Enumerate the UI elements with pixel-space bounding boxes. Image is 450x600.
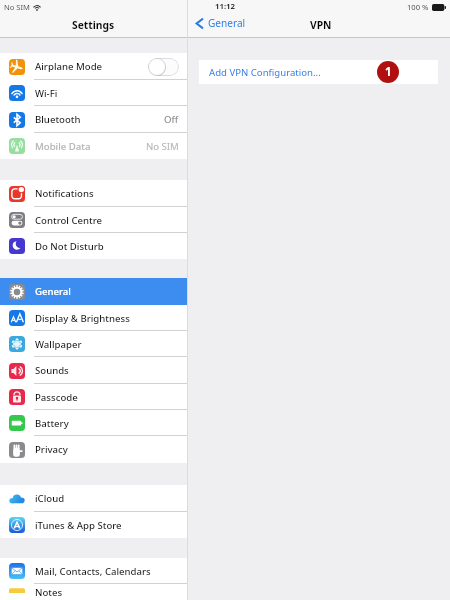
staticText: No SIM	[4, 2, 30, 12]
staticText: Mail, Contacts, Calendars	[35, 565, 179, 578]
staticText: Notes	[35, 586, 179, 599]
button[interactable]: Bluetooth	[0, 106, 187, 133]
button[interactable]: Airplane Mode	[0, 53, 187, 80]
button[interactable]: Notifications	[0, 180, 187, 207]
staticText: iCloud	[35, 492, 179, 505]
staticText: Settings	[72, 18, 115, 32]
staticText: Airplane Mode	[35, 60, 148, 73]
staticText: No SIM	[146, 140, 179, 153]
staticText: Mobile Data	[35, 140, 146, 153]
staticText: Battery	[35, 417, 179, 430]
button[interactable]: Sounds	[0, 357, 187, 384]
staticText: General	[208, 16, 246, 30]
button[interactable]: Mobile Data	[0, 133, 187, 159]
button[interactable]: Display & Brightness	[0, 305, 187, 331]
staticText: Display & Brightness	[35, 312, 179, 325]
button[interactable]: Wallpaper	[0, 331, 187, 357]
staticText: VPN	[310, 18, 332, 32]
staticText: Add VPN Configuration...	[209, 66, 321, 79]
staticText: Passcode	[35, 391, 179, 404]
button[interactable]: Passcode	[0, 384, 187, 410]
button[interactable]: Add VPN Configuration...	[199, 60, 438, 84]
staticText: 11:12	[215, 1, 236, 12]
button[interactable]: Privacy	[0, 436, 187, 463]
staticText: General	[35, 285, 179, 298]
button[interactable]: General	[193, 16, 246, 30]
staticText: Privacy	[35, 443, 179, 456]
staticText: iTunes & App Store	[35, 519, 179, 532]
staticText: 100 %	[407, 2, 429, 12]
button[interactable]: Mail, Contacts, Calendars	[0, 558, 187, 584]
button[interactable]: Wi-Fi	[0, 80, 187, 106]
staticText: Bluetooth	[35, 113, 164, 126]
staticText: Wallpaper	[35, 338, 179, 351]
staticText: Off	[164, 113, 179, 126]
button[interactable]: General	[0, 278, 187, 305]
staticText: Wi-Fi	[35, 87, 179, 100]
button[interactable]: Airplane Mode toggle	[148, 58, 179, 76]
staticText: 1	[385, 64, 392, 80]
staticText: Control Centre	[35, 214, 179, 227]
staticText: Notifications	[35, 187, 179, 200]
button[interactable]: iCloud	[0, 485, 187, 512]
staticText: Sounds	[35, 364, 179, 377]
button[interactable]: Control Centre	[0, 207, 187, 233]
staticText: Do Not Disturb	[35, 240, 179, 253]
button[interactable]: Battery	[0, 410, 187, 436]
button[interactable]: Notes	[0, 584, 187, 600]
button[interactable]: Do Not Disturb	[0, 233, 187, 259]
button[interactable]: iTunes & App Store	[0, 512, 187, 538]
